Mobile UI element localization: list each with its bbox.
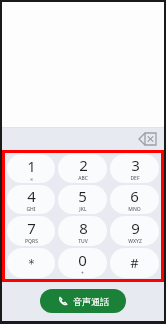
staticText: ABC bbox=[78, 175, 88, 182]
staticText: 5 bbox=[78, 186, 87, 206]
staticText: ＊ bbox=[25, 255, 38, 271]
staticText: 1 bbox=[27, 156, 36, 176]
button[interactable]: 8 bbox=[58, 216, 107, 246]
button[interactable]: ＊ bbox=[7, 248, 55, 278]
button[interactable]: 7 bbox=[7, 216, 55, 246]
staticText: 8 bbox=[79, 218, 88, 238]
staticText: DEF bbox=[130, 175, 140, 182]
staticText: JKL bbox=[79, 206, 87, 213]
staticText: TUV bbox=[78, 238, 88, 245]
button[interactable]: 4 bbox=[7, 185, 55, 214]
button[interactable]: 6 bbox=[110, 185, 159, 214]
staticText: # bbox=[130, 254, 139, 272]
button[interactable]: Backspace bbox=[138, 132, 156, 146]
staticText: GHI bbox=[26, 206, 36, 213]
staticText: WXYZ bbox=[128, 238, 142, 245]
staticText: 7 bbox=[27, 218, 36, 238]
button[interactable]: 0 bbox=[58, 248, 107, 278]
staticText: 4 bbox=[27, 186, 36, 206]
button[interactable]: 3 bbox=[110, 154, 159, 183]
staticText: 音声通話 bbox=[73, 296, 109, 307]
button[interactable]: 9 bbox=[110, 216, 159, 246]
button[interactable]: 5 bbox=[58, 185, 107, 214]
staticText: 3 bbox=[131, 155, 140, 175]
staticText: PQRS bbox=[25, 238, 38, 245]
staticText: ∞ bbox=[29, 176, 34, 182]
staticText: + bbox=[81, 270, 84, 277]
staticText: 0 bbox=[78, 250, 87, 270]
button[interactable]: 音声通話 bbox=[40, 289, 126, 313]
button[interactable]: 1 bbox=[7, 154, 55, 183]
button[interactable]: # bbox=[110, 248, 159, 278]
staticText: 2 bbox=[79, 155, 88, 175]
button[interactable]: 2 bbox=[58, 154, 107, 183]
staticText: 6 bbox=[130, 186, 139, 206]
staticText: MNO bbox=[128, 206, 141, 213]
staticText: 9 bbox=[131, 218, 140, 238]
